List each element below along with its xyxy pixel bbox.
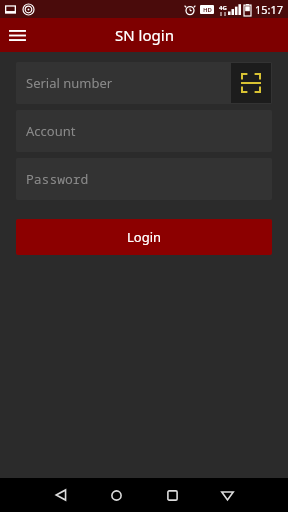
staticText: Account (26, 122, 76, 140)
button[interactable]: Recent apps (155, 478, 189, 512)
staticText: SN login (115, 25, 174, 45)
button[interactable]: Hide keyboard (210, 478, 244, 512)
staticText: HD (203, 6, 212, 14)
button[interactable]: Password (16, 158, 272, 200)
button[interactable]: Account (16, 110, 272, 152)
button[interactable]: Back (44, 478, 78, 512)
staticText: Password (26, 170, 89, 188)
button[interactable]: Serial number (16, 62, 272, 104)
button[interactable]: Scan serial number barcode (231, 63, 271, 103)
staticText: Login (127, 228, 162, 246)
button[interactable]: Login (16, 219, 272, 255)
staticText: Serial number (26, 74, 113, 92)
staticText: 4G (219, 4, 227, 12)
button[interactable]: Open navigation menu (0, 18, 34, 52)
staticText: 15:17 (255, 2, 284, 17)
button[interactable]: Home (99, 478, 133, 512)
